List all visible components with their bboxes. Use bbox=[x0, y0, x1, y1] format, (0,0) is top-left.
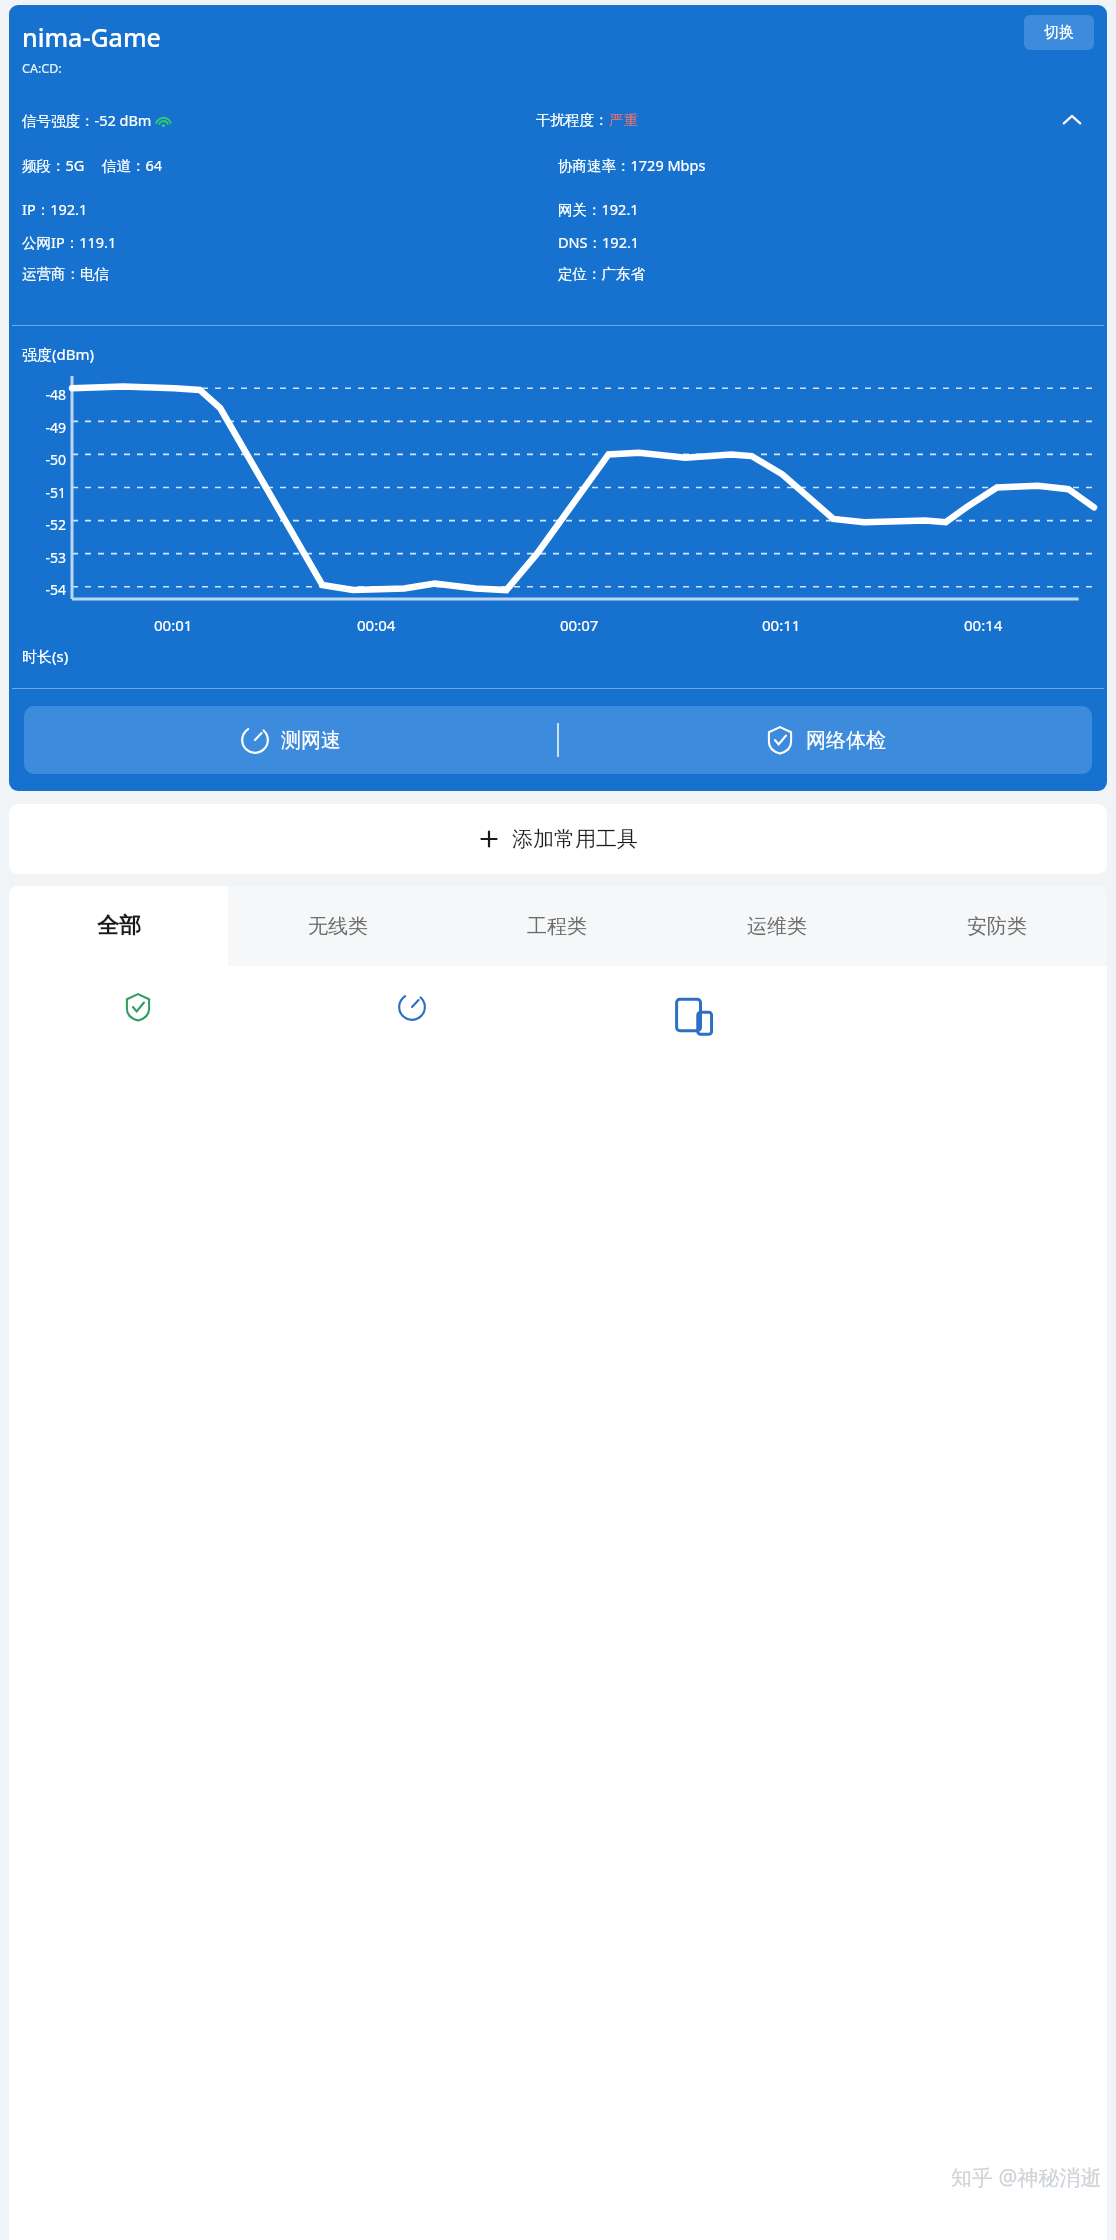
button[interactable]: Network check bbox=[123, 992, 169, 1038]
staticText: 网络体检 bbox=[806, 728, 886, 753]
button[interactable]: 工程类 bbox=[447, 886, 667, 966]
button[interactable]: 无线类 bbox=[228, 886, 447, 966]
staticText: 工程类 bbox=[527, 914, 587, 939]
staticText: 网关：192.1 bbox=[558, 199, 639, 219]
staticText: 00:11 bbox=[762, 615, 801, 635]
staticText: 频段：5G bbox=[22, 155, 85, 175]
staticText: 干扰程度： bbox=[536, 111, 609, 129]
button[interactable]: 安防类 bbox=[887, 886, 1107, 966]
staticText: -52 bbox=[45, 515, 66, 534]
staticText: -49 bbox=[45, 418, 66, 437]
staticText: 无线类 bbox=[308, 914, 368, 939]
staticText: 测网速 bbox=[281, 728, 341, 753]
button[interactable]: 切换 bbox=[1024, 15, 1094, 50]
staticText: 信道：64 bbox=[102, 155, 163, 175]
button[interactable]: Speed test bbox=[397, 992, 443, 1038]
staticText: 强度(dBm) bbox=[22, 344, 95, 364]
staticText: CA:CD: bbox=[22, 60, 62, 77]
button[interactable]: Devices bbox=[672, 992, 718, 1038]
button[interactable]: 全部 bbox=[9, 886, 228, 966]
staticText: -50 bbox=[45, 450, 66, 469]
staticText: 切换 bbox=[1044, 23, 1074, 42]
staticText: -48 bbox=[45, 385, 66, 404]
button[interactable]: Collapse bbox=[1050, 98, 1094, 142]
staticText: 运维类 bbox=[747, 914, 807, 939]
staticText: -53 bbox=[45, 548, 66, 567]
button[interactable]: 运维类 bbox=[667, 886, 887, 966]
staticText: 00:07 bbox=[560, 615, 599, 635]
staticText: IP：192.1 bbox=[22, 199, 88, 219]
staticText: 信号强度：-52 dBm bbox=[22, 110, 152, 130]
staticText: -54 bbox=[45, 580, 66, 599]
staticText: 添加常用工具 bbox=[512, 826, 638, 852]
staticText: 00:14 bbox=[964, 615, 1003, 635]
button[interactable]: 测网速 bbox=[24, 706, 557, 774]
staticText: 定位：广东省 bbox=[558, 265, 645, 283]
button[interactable]: 添加常用工具 bbox=[9, 804, 1107, 874]
staticText: 00:04 bbox=[357, 615, 396, 635]
staticText: 知乎 @神秘消逝 bbox=[951, 2163, 1102, 2192]
button[interactable]: 网络体检 bbox=[559, 706, 1092, 774]
staticText: 公网IP：119.1 bbox=[22, 232, 117, 252]
staticText: 全部 bbox=[97, 912, 141, 940]
staticText: DNS：192.1 bbox=[558, 232, 640, 252]
staticText: 严重 bbox=[609, 111, 638, 129]
staticText: 运营商：电信 bbox=[22, 265, 109, 283]
staticText: -51 bbox=[45, 483, 66, 502]
staticText: 安防类 bbox=[967, 914, 1027, 939]
staticText: 00:01 bbox=[154, 615, 193, 635]
staticText: nima-Game bbox=[22, 20, 161, 54]
staticText: 时长(s) bbox=[22, 646, 69, 666]
staticText: 协商速率：1729 Mbps bbox=[558, 155, 706, 175]
